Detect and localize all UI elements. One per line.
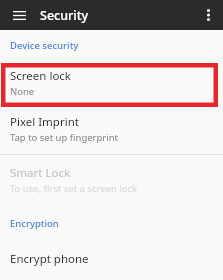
button[interactable]: Screen lock [10,68,218,107]
staticText: Pixel Imprint [10,114,79,130]
staticText: Tap to set up fingerprint [10,131,119,144]
staticText: Smart Lock [10,165,71,181]
button[interactable]: Encrypt phone [0,251,223,280]
staticText: Encrypt phone [10,251,89,267]
staticText: Device security [10,39,223,52]
staticText: Security [40,7,89,24]
button[interactable]: More options [196,3,220,27]
button[interactable]: Pixel Imprint [0,107,223,154]
staticText: Encryption [10,217,223,230]
button[interactable]: Open navigation drawer [7,3,31,27]
button[interactable]: Smart Lock [0,155,223,205]
staticText: Screen lock [10,68,72,84]
staticText: To use, first set a screen lock [10,182,138,195]
staticText: None [10,85,35,98]
